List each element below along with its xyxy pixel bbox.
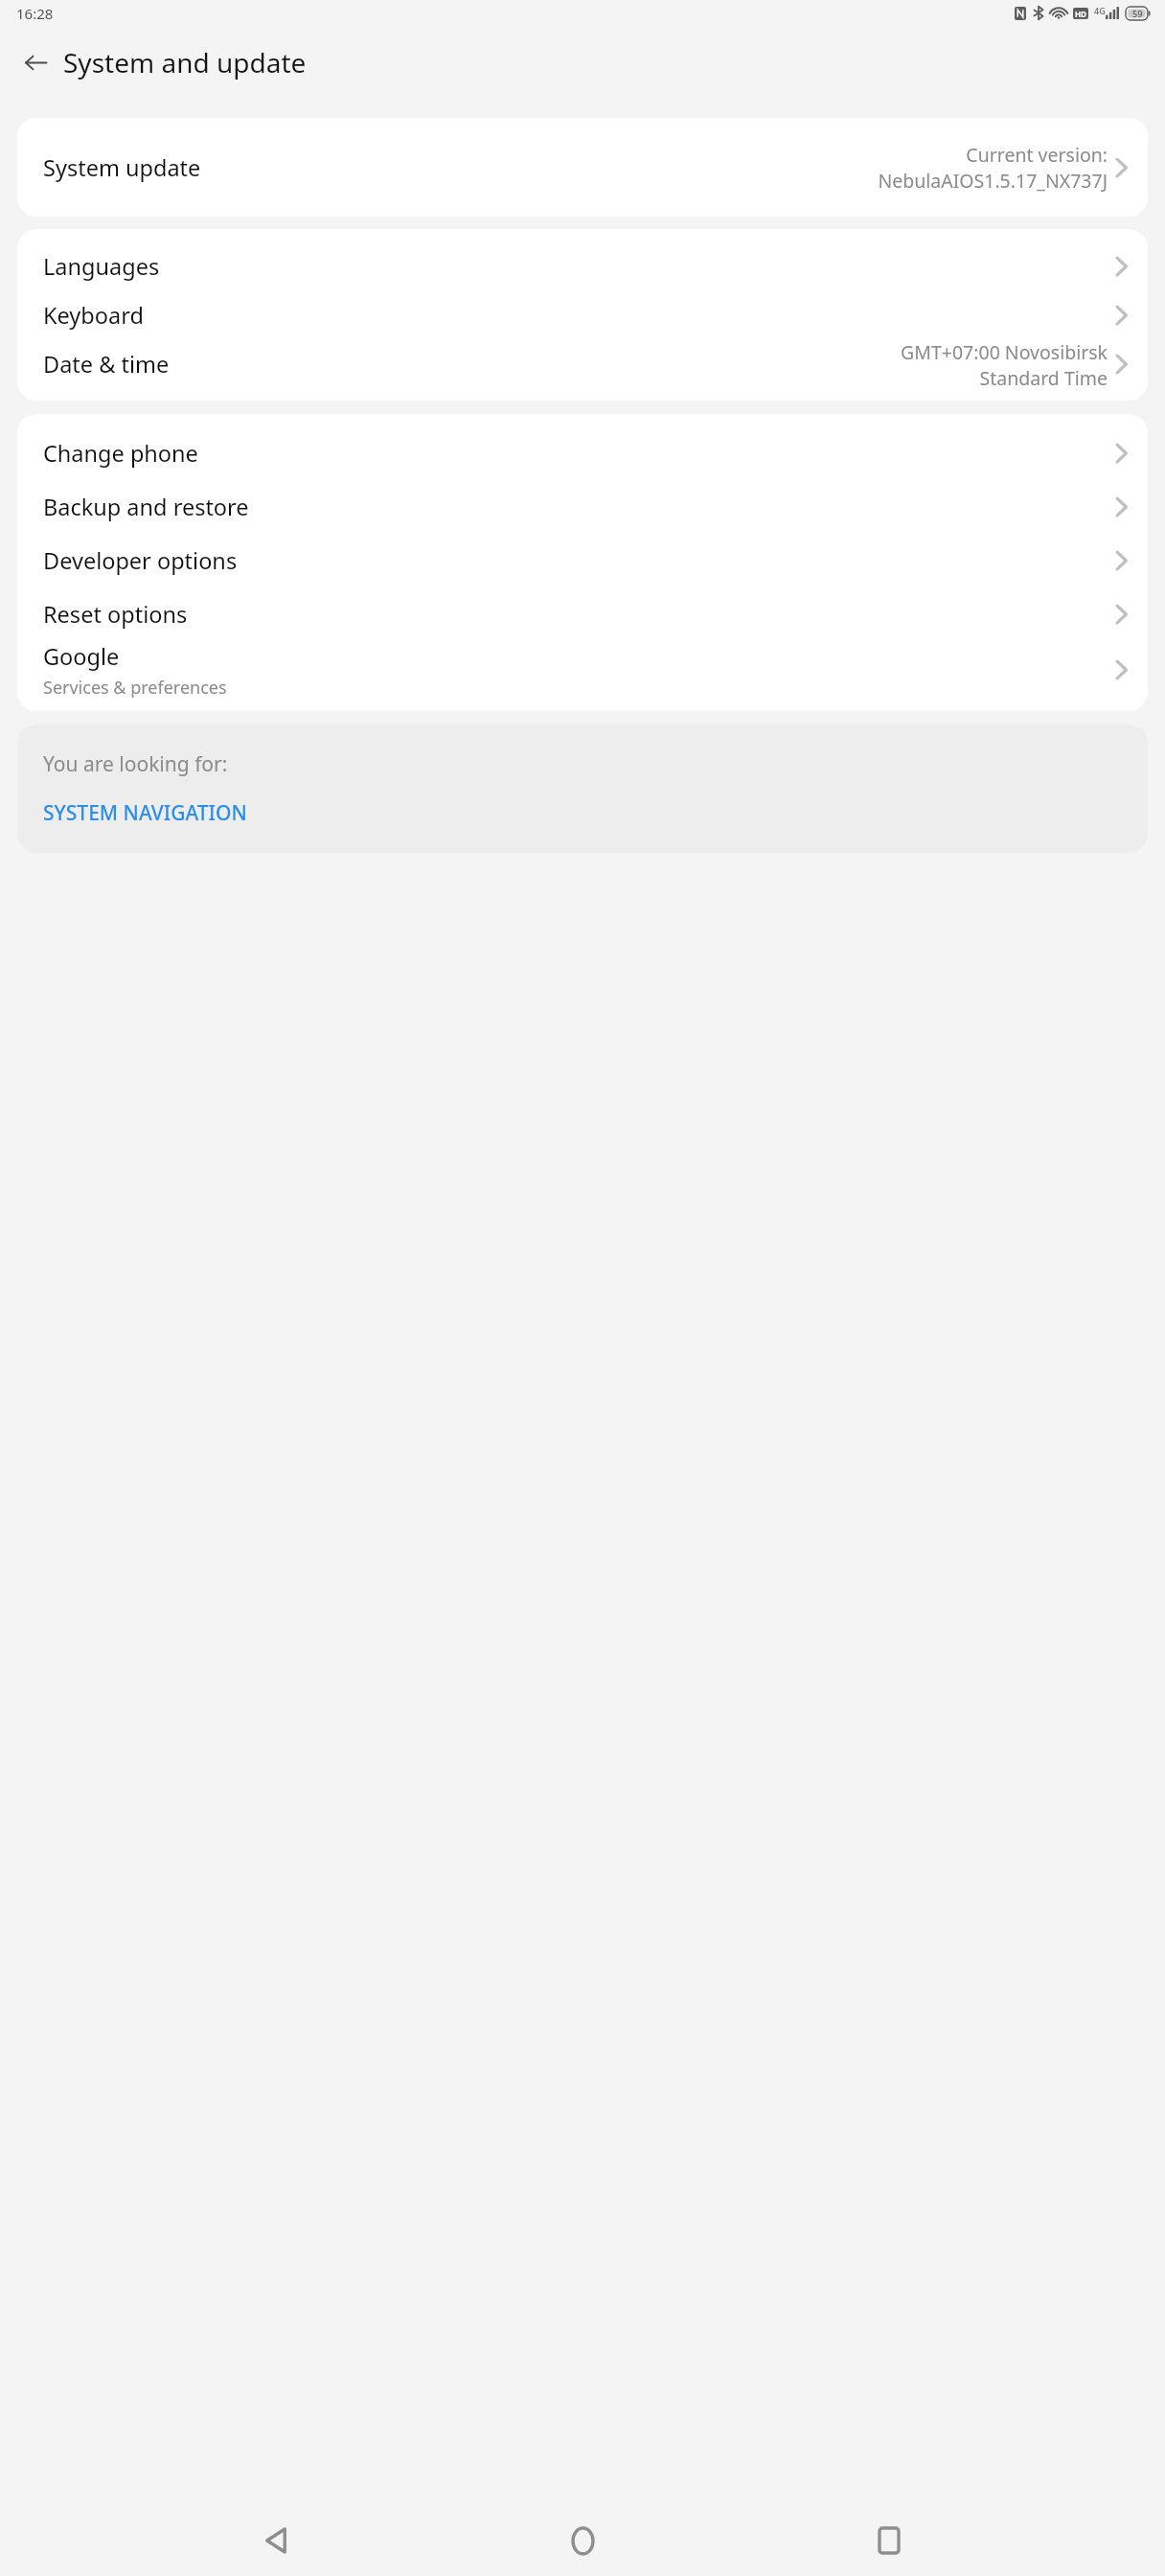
staticText: System update [43,152,201,183]
button[interactable]: Date & time [17,339,1148,388]
staticText: 4G [1094,5,1106,16]
staticText: Standard Time [979,365,1108,388]
staticText: 59 [1132,8,1143,19]
staticText: Keyboard [43,300,144,331]
button[interactable]: Change phone [17,426,1148,480]
staticText: Current version: [966,142,1108,168]
button[interactable]: Keyboard [17,290,1148,339]
button[interactable]: Recent apps [858,2510,920,2571]
button[interactable]: Languages [17,241,1148,290]
staticText: SYSTEM NAVIGATION [43,799,247,827]
staticText: Backup and restore [43,492,249,522]
staticText: GMT+07:00 Novosibirsk [901,339,1108,365]
staticText: Reset options [43,599,188,630]
staticText: Developer options [43,545,238,576]
button[interactable]: System update [17,130,1148,204]
button[interactable]: Back [11,37,60,87]
staticText: Date & time [43,349,170,379]
button[interactable]: Google [17,641,1148,699]
staticText: Services & preferences [43,676,227,699]
button[interactable]: Reset options [17,587,1148,641]
button[interactable]: SYSTEM NAVIGATION [43,799,247,827]
staticText: NebulaAIOS1.5.17_NX737J [878,168,1108,194]
button[interactable]: Back [245,2510,307,2571]
button[interactable]: Developer options [17,534,1148,587]
staticText: Google [43,641,120,672]
button[interactable]: Backup and restore [17,480,1148,534]
staticText: Change phone [43,438,198,469]
staticText: 16:28 [16,4,54,23]
staticText: HD [1075,9,1086,19]
staticText: You are looking for: [43,750,228,778]
staticText: Languages [43,251,160,282]
staticText: System and update [63,44,307,80]
button[interactable]: Home [552,2510,613,2571]
